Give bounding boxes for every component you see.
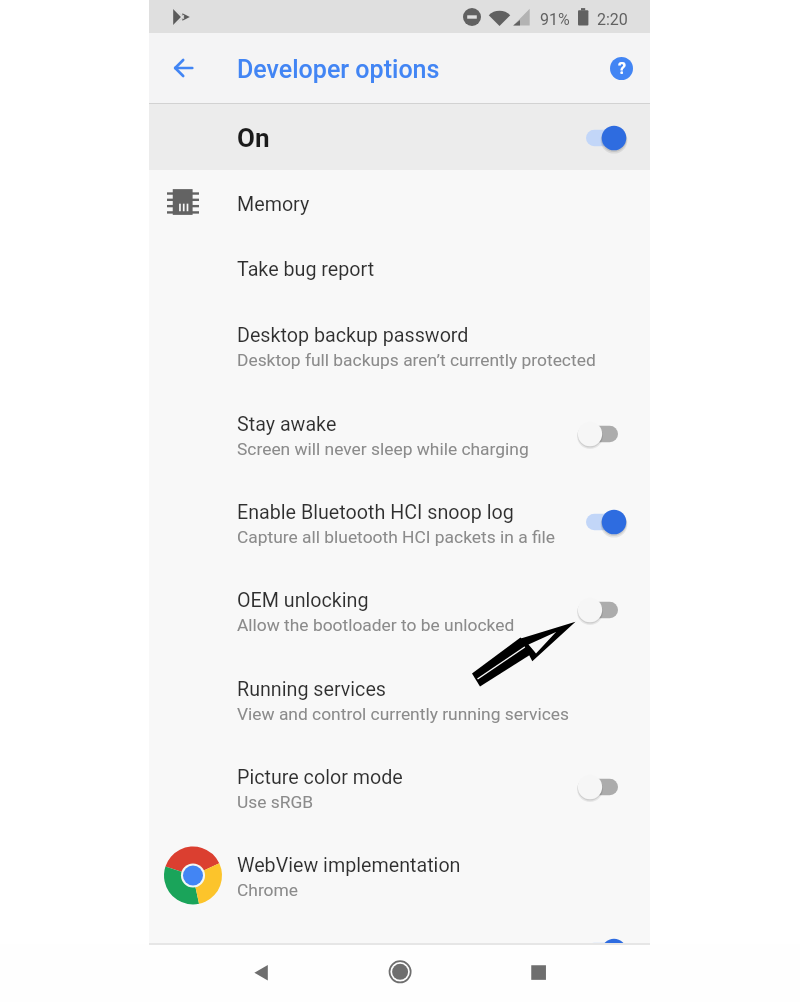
button[interactable]: Back (237, 949, 285, 997)
staticText: Chrome (237, 880, 299, 900)
staticText: Capture all bluetooth HCI packets in a f… (237, 527, 556, 547)
staticText: Stay awake (237, 413, 337, 436)
staticText: Desktop full backups aren’t currently pr… (237, 350, 596, 370)
staticText: Use sRGB (237, 792, 314, 812)
button[interactable]: Memory (149, 179, 650, 229)
button[interactable]: Enable Bluetooth HCI snoop log (149, 487, 650, 553)
button[interactable]: OEM unlocking (149, 575, 650, 641)
staticText: OEM unlocking (237, 589, 369, 612)
staticText: Enable Bluetooth HCI snoop log (237, 501, 514, 524)
staticText: ? (618, 59, 626, 78)
button[interactable]: WebView implementation (149, 840, 650, 906)
button[interactable]: Desktop backup password (149, 310, 650, 376)
staticText: Running services (237, 678, 387, 701)
button[interactable]: Picture color mode (149, 752, 650, 818)
staticText: Developer options (237, 55, 440, 84)
staticText: Allow the bootloader to be unlocked (237, 615, 515, 635)
staticText: 91% (540, 10, 570, 29)
staticText: WebView implementation (237, 854, 461, 877)
button[interactable]: On (149, 104, 650, 170)
button[interactable]: Navigate up (160, 48, 202, 90)
staticText: Memory (237, 193, 310, 216)
staticText: 2:20 (597, 10, 628, 29)
button[interactable]: Home (376, 948, 424, 996)
staticText: Picture color mode (237, 766, 403, 789)
button[interactable]: Stay awake (149, 399, 650, 465)
button[interactable]: Recent apps (515, 948, 563, 996)
button[interactable]: Help (600, 47, 642, 89)
button[interactable]: Take bug report (149, 244, 650, 294)
staticText: Screen will never sleep while charging (237, 439, 529, 459)
staticText: Take bug report (237, 258, 375, 281)
staticText: Desktop backup password (237, 324, 469, 347)
staticText: On (237, 123, 270, 153)
staticText: View and control currently running servi… (237, 704, 569, 724)
button[interactable]: Running services (149, 664, 650, 730)
